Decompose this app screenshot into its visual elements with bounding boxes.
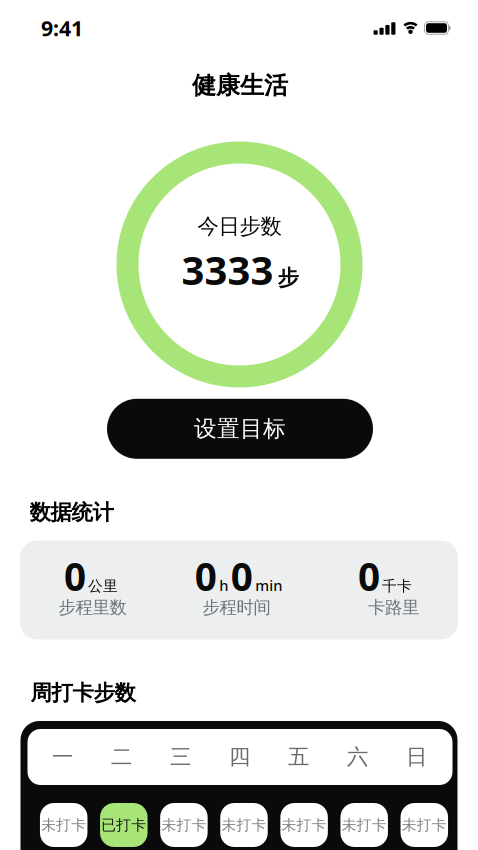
staticText: 今日步数 <box>197 213 281 240</box>
staticText: 二 <box>111 744 132 770</box>
staticText: 健康生活 <box>192 71 288 100</box>
staticText: 未打卡 <box>402 816 447 834</box>
staticText: 日 <box>406 744 427 770</box>
staticText: 公里 <box>88 577 118 595</box>
staticText: 未打卡 <box>282 816 327 834</box>
button[interactable]: 未打卡 <box>340 803 388 847</box>
button[interactable]: 未打卡 <box>280 803 328 847</box>
button[interactable]: 未打卡 <box>40 803 87 847</box>
button[interactable]: 设置目标 <box>107 399 373 459</box>
staticText: 步程里数 <box>58 597 126 618</box>
staticText: 已打卡 <box>101 816 146 834</box>
staticText: 未打卡 <box>41 816 86 834</box>
staticText: 卡路里 <box>368 597 419 618</box>
button[interactable]: 已打卡 <box>100 803 147 847</box>
staticText: 9:41 <box>41 14 83 42</box>
staticText: 0 <box>64 550 86 602</box>
staticText: 未打卡 <box>161 816 206 834</box>
staticText: 设置目标 <box>194 415 286 443</box>
staticText: 四 <box>229 744 250 770</box>
staticText: 六 <box>347 744 368 770</box>
staticText: h <box>219 576 228 595</box>
staticText: 步程时间 <box>202 597 270 618</box>
staticText: 一 <box>52 744 73 770</box>
staticText: 未打卡 <box>342 816 387 834</box>
staticText: min <box>255 576 282 595</box>
staticText: 0 <box>231 550 253 602</box>
staticText: 周打卡步数 <box>30 680 135 706</box>
staticText: 千卡 <box>382 577 412 595</box>
staticText: 数据统计 <box>29 499 113 526</box>
staticText: 0 <box>358 550 380 602</box>
staticText: 0 <box>195 550 217 602</box>
staticText: 五 <box>288 744 309 770</box>
staticText: 3333 <box>181 243 273 296</box>
button[interactable]: 未打卡 <box>220 803 268 847</box>
staticText: 未打卡 <box>221 816 266 834</box>
button[interactable]: 未打卡 <box>401 803 448 847</box>
staticText: 步 <box>277 265 298 291</box>
staticText: 三 <box>170 744 191 770</box>
button[interactable]: 未打卡 <box>160 803 208 847</box>
